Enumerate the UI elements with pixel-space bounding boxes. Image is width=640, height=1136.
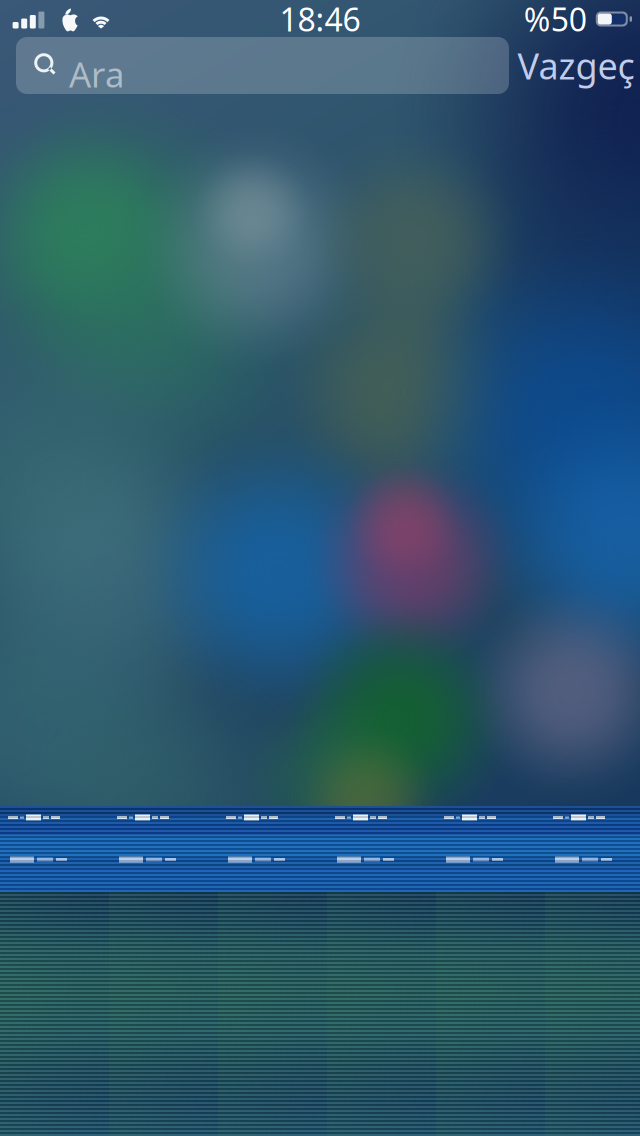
button[interactable]: Vazgeç — [521, 37, 631, 94]
staticText: 18:46 — [279, 0, 360, 40]
button[interactable]: Ara — [16, 37, 509, 94]
staticText: %50 — [524, 0, 587, 40]
staticText: Vazgeç — [517, 42, 634, 89]
staticText: Ara — [69, 51, 124, 97]
